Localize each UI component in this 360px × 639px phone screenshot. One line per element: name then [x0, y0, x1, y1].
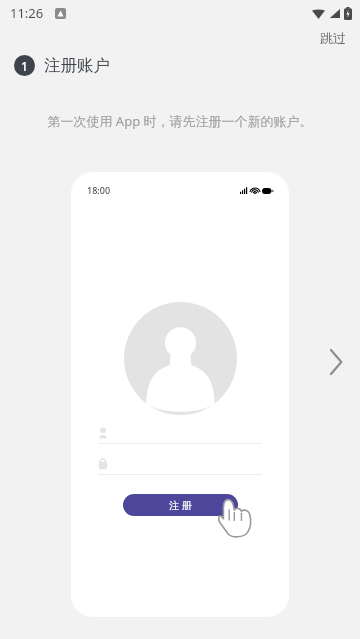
staticText: 11:26	[10, 4, 44, 22]
button[interactable]: Next	[318, 340, 352, 384]
staticText: 1	[21, 58, 28, 74]
staticText: 18:00	[87, 184, 111, 196]
other: Tap register	[219, 498, 253, 538]
button[interactable]	[98, 458, 262, 475]
button[interactable]: 跳过	[316, 28, 350, 48]
button[interactable]: 注 册	[123, 494, 238, 516]
staticText: 注 册	[169, 498, 192, 512]
staticText: 跳过	[320, 30, 346, 46]
staticText: 注册账户	[44, 55, 110, 76]
button[interactable]	[98, 427, 262, 444]
staticText: 第一次使用 App 时，请先注册一个新的账户。	[47, 112, 313, 130]
